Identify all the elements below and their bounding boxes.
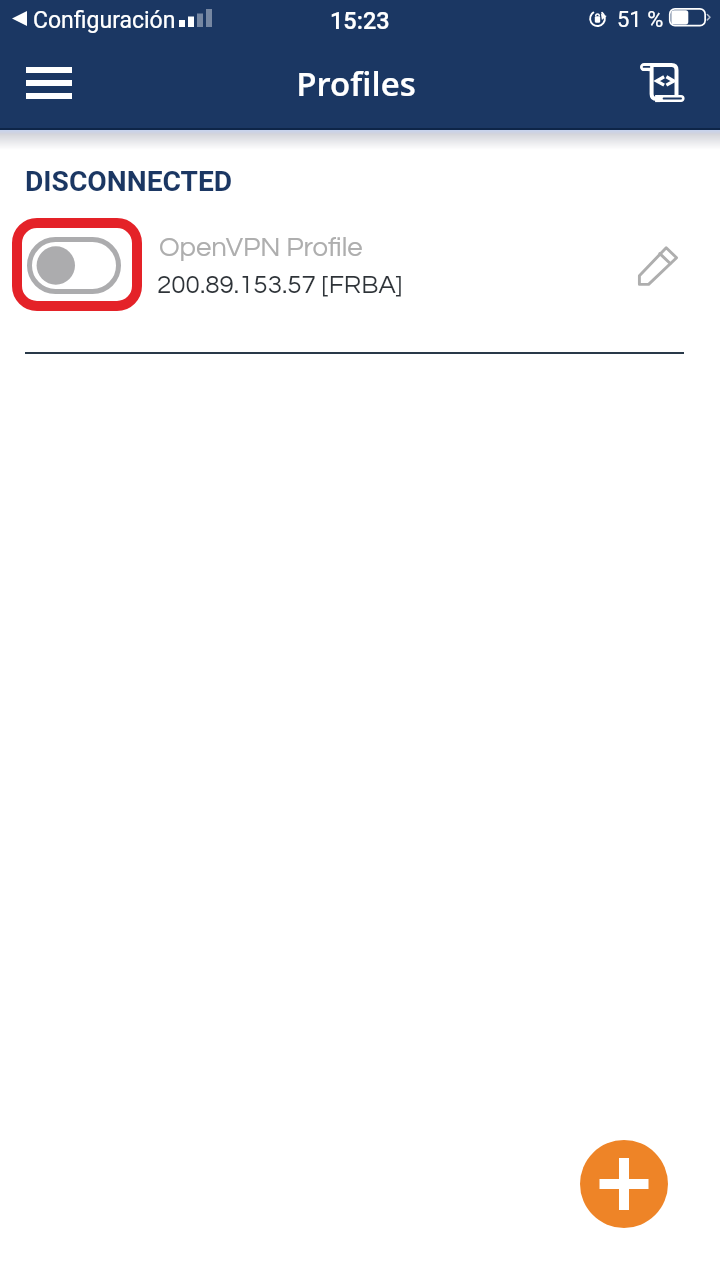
staticText: DISCONNECTED [25,165,233,198]
button[interactable]: Edit profile [628,235,688,295]
staticText: 51 % [617,7,664,33]
button[interactable]: Import profile [624,51,702,115]
staticText: 200.89.153.57 [FRBA] [157,272,403,299]
button[interactable]: Add profile [580,1140,668,1228]
staticText: OpenVPN Profile [159,233,363,261]
button[interactable]: Connect VPN profile [0,210,720,340]
staticText: Configuración [33,7,176,34]
button[interactable]: Menu [10,51,88,115]
staticText: 15:23 [330,7,390,35]
staticText: Profiles [0,61,716,106]
button[interactable]: Connect VPN profile [12,218,142,311]
